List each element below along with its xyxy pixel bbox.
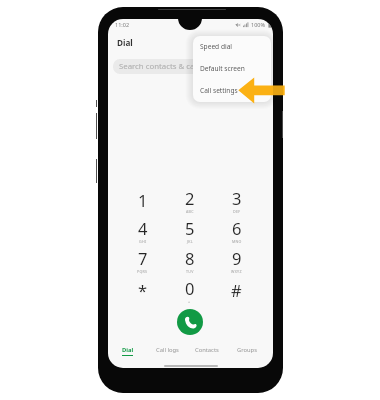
staticText: GHI — [139, 239, 147, 244]
staticText: ABC — [186, 209, 194, 214]
staticText: Call settings — [200, 86, 238, 95]
staticText: Search contacts & calls — [119, 61, 203, 72]
staticText: 2 — [185, 187, 195, 209]
button[interactable]: Search contacts & calls — [113, 59, 271, 74]
staticText: Dial — [117, 37, 133, 48]
button[interactable]: 3 — [213, 185, 260, 215]
staticText: Contacts — [195, 346, 219, 354]
button[interactable]: 6 — [213, 215, 260, 245]
button[interactable]: Dial — [108, 346, 147, 362]
button[interactable]: Contacts — [187, 346, 227, 362]
button[interactable]: * — [119, 275, 166, 305]
button[interactable]: Call — [177, 309, 203, 335]
button[interactable]: 1 — [119, 185, 166, 215]
button[interactable]: 9 — [213, 245, 260, 275]
button[interactable]: Default screen — [193, 58, 271, 80]
staticText: 1 — [138, 189, 148, 211]
button[interactable]: # — [213, 275, 260, 305]
button[interactable]: Groups — [227, 346, 267, 362]
button[interactable]: Call settings — [193, 80, 271, 102]
staticText: 5 — [185, 217, 195, 239]
button[interactable]: 7 — [119, 245, 166, 275]
staticText: 7 — [138, 247, 148, 269]
staticText: 6 — [232, 217, 242, 239]
button[interactable]: 2 — [166, 185, 213, 215]
staticText: Dial — [122, 346, 134, 354]
staticText: Default screen — [200, 64, 245, 73]
staticText: 4 — [138, 217, 148, 239]
staticText: Groups — [237, 346, 257, 354]
button[interactable]: Call logs — [147, 346, 187, 362]
staticText: + — [188, 299, 191, 304]
staticText: # — [231, 279, 242, 301]
staticText: 11:02 — [115, 21, 130, 28]
staticText: 100% — [251, 21, 266, 28]
staticText: WXYZ — [231, 269, 242, 274]
button[interactable]: 4 — [119, 215, 166, 245]
staticText: 0 — [185, 277, 195, 299]
button[interactable]: Speed dial — [193, 36, 271, 58]
button[interactable]: 5 — [166, 215, 213, 245]
staticText: Call logs — [156, 346, 179, 354]
staticText: PQRS — [137, 269, 148, 274]
staticText: JKL — [187, 239, 193, 244]
staticText: DEF — [233, 209, 241, 214]
staticText: * — [138, 279, 148, 301]
button[interactable]: 8 — [166, 245, 213, 275]
staticText: MNO — [232, 239, 242, 244]
staticText: 9 — [232, 247, 242, 269]
staticText: Speed dial — [200, 42, 233, 51]
button[interactable]: 0 — [166, 275, 213, 305]
staticText: TUV — [186, 269, 194, 274]
staticText: 3 — [232, 187, 242, 209]
staticText: 8 — [185, 247, 195, 269]
